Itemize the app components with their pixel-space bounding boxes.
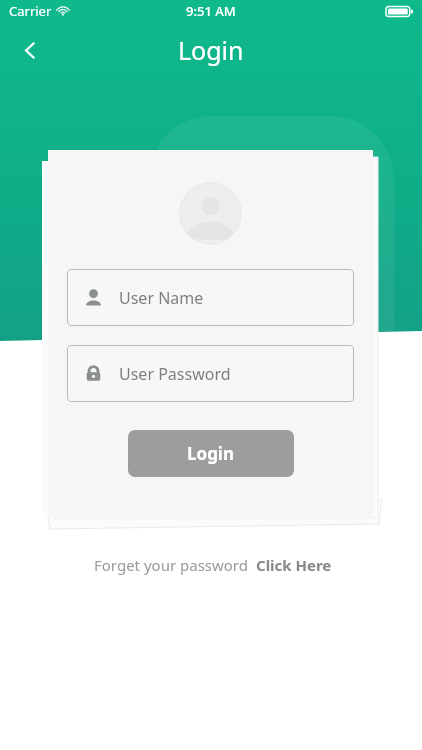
staticText: User Name bbox=[119, 287, 204, 309]
staticText: Carrier bbox=[9, 2, 52, 20]
staticText: Login bbox=[187, 442, 235, 465]
staticText: 9:51 AM bbox=[186, 2, 236, 20]
button[interactable]: User Password bbox=[67, 345, 354, 402]
staticText: User Password bbox=[119, 363, 231, 385]
button[interactable]: Back bbox=[8, 28, 52, 72]
staticText: Forget your password bbox=[94, 555, 248, 575]
staticText: Login bbox=[178, 33, 244, 67]
button[interactable]: User Name bbox=[67, 269, 354, 326]
button[interactable]: Login bbox=[128, 430, 294, 477]
staticText: Click Here bbox=[256, 555, 332, 575]
button[interactable]: Forget your password bbox=[94, 555, 332, 575]
